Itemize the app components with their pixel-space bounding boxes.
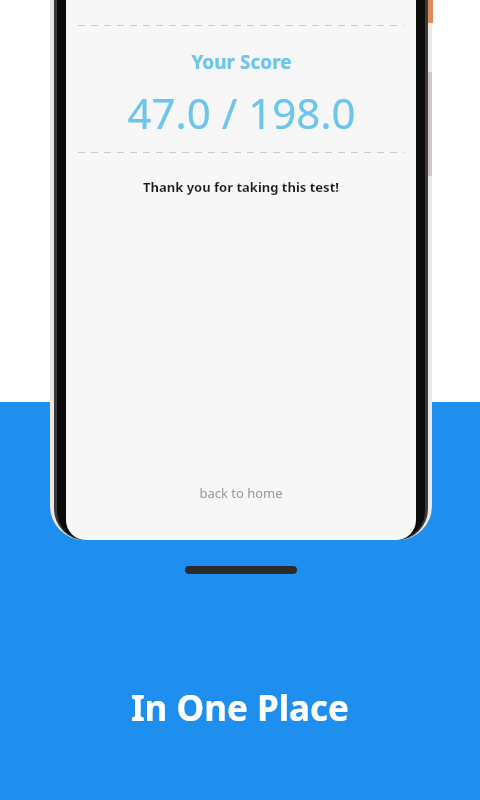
staticText: back to home — [199, 484, 283, 502]
staticText: In One Place — [131, 684, 349, 732]
button[interactable]: back to home — [66, 474, 416, 512]
staticText: 47.0 / 198.0 — [127, 84, 356, 141]
staticText: Thank you for taking this test! — [143, 178, 339, 196]
staticText: Your Score — [191, 49, 292, 75]
